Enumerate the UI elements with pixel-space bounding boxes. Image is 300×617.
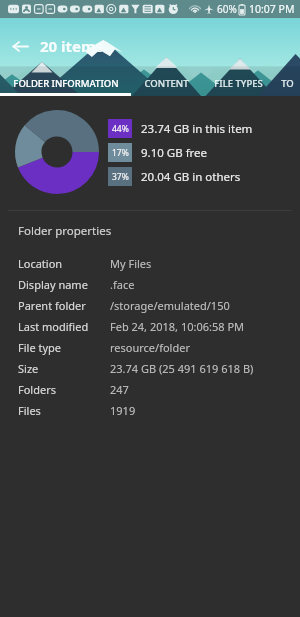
staticText: 20.04 GB in others	[141, 169, 241, 185]
button[interactable]: Last modified	[18, 316, 288, 337]
button[interactable]: FOLDER INFORMATION	[0, 70, 131, 96]
staticText: File type	[18, 340, 61, 355]
button[interactable]: Navigate up	[0, 26, 40, 66]
staticText: My Files	[110, 256, 152, 271]
button[interactable]: File type	[18, 337, 288, 358]
staticText: 247	[110, 382, 129, 397]
staticText: 9.10 GB free	[141, 145, 208, 161]
button[interactable]: Display name	[18, 274, 288, 295]
button[interactable]: Folders	[18, 379, 288, 400]
staticText: 23.74 GB in this item	[141, 121, 253, 137]
button[interactable]: FILE TYPES	[201, 70, 275, 96]
button[interactable]: Files	[18, 400, 288, 421]
staticText: Last modified	[18, 319, 89, 334]
staticText: Location	[18, 256, 63, 271]
staticText: 10:07 PM	[249, 2, 295, 16]
staticText: 20 items	[40, 36, 104, 56]
button[interactable]: 17%	[108, 143, 288, 162]
staticText: Feb 24, 2018, 10:06:58 PM	[110, 319, 245, 334]
staticText: Parent folder	[18, 298, 86, 313]
staticText: FILE TYPES	[214, 77, 263, 90]
staticText: Size	[18, 361, 39, 376]
button[interactable]: CONTENT	[131, 70, 201, 96]
staticText: 17%	[112, 147, 129, 159]
button[interactable]: Parent folder	[18, 295, 288, 316]
button[interactable]: 44%	[108, 119, 288, 138]
staticText: Folder properties	[18, 223, 112, 239]
staticText: 23.74 GB (25 491 619 618 B)	[110, 361, 254, 376]
staticText: CONTENT	[144, 77, 189, 90]
staticText: 37%	[112, 171, 129, 183]
button[interactable]: TO	[275, 70, 300, 96]
staticText: .face	[110, 277, 135, 292]
staticText: resource/folder	[110, 340, 190, 355]
staticText: /storage/emulated/150	[110, 298, 230, 313]
staticText: 44%	[112, 123, 129, 135]
button[interactable]: 37%	[108, 167, 288, 186]
staticText: Folders	[18, 382, 56, 397]
staticText: TO	[281, 77, 294, 90]
staticText: 1919	[110, 403, 136, 418]
staticText: 60%	[217, 2, 237, 16]
staticText: Display name	[18, 277, 88, 292]
staticText: Files	[18, 403, 41, 418]
button[interactable]: Location	[18, 253, 288, 274]
staticText: FOLDER INFORMATION	[13, 77, 119, 90]
button[interactable]: Size	[18, 358, 288, 379]
